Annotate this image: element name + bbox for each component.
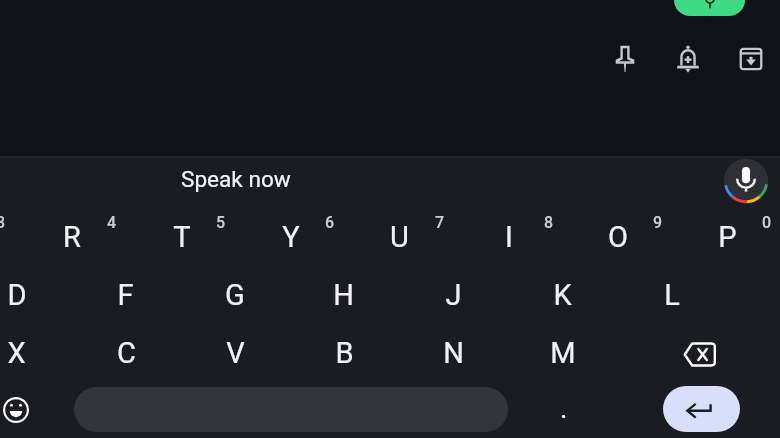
staticText: C [117,336,136,370]
staticText: L [664,278,680,312]
button[interactable]: N [399,324,508,382]
staticText: T [173,220,191,254]
button[interactable]: Enter [663,386,740,432]
staticText: 0 [762,213,772,232]
staticText: M [550,336,576,370]
button[interactable]: V [181,324,290,382]
staticText: X [7,336,26,370]
button[interactable]: J [399,266,508,324]
staticText: H [333,278,354,312]
staticText: . [560,392,568,425]
button[interactable]: Search [674,0,745,16]
button[interactable]: Pin [602,36,648,82]
button[interactable]: H [289,266,398,324]
staticText: D [7,278,27,312]
button[interactable]: U [345,208,454,266]
button[interactable]: Y [236,208,345,266]
staticText: O [608,220,628,254]
button[interactable]: Add reminder [665,36,711,82]
staticText: 3 [0,213,6,232]
button[interactable]: Speak now [154,156,318,202]
button[interactable]: K [508,266,617,324]
staticText: K [553,278,572,312]
staticText: 4 [107,213,117,232]
staticText: Y [282,220,300,254]
button[interactable]: X [0,324,71,382]
staticText: 7 [435,213,445,232]
staticText: I [505,220,513,254]
button[interactable]: Emoji [0,381,46,438]
button[interactable]: T [127,208,236,266]
staticText: G [225,278,245,312]
button[interactable]: M [508,324,617,382]
button[interactable]: I [454,208,563,266]
staticText: Speak now [181,166,291,192]
staticText: N [443,336,464,370]
button[interactable]: R [17,208,126,266]
button[interactable]: F [71,266,180,324]
button[interactable]: G [180,266,289,324]
staticText: F [117,278,134,312]
button[interactable]: P [673,208,780,266]
button[interactable]: D [0,266,71,324]
button[interactable]: Archive [728,36,774,82]
staticText: R [63,220,81,254]
button[interactable]: B [290,324,399,382]
button[interactable]: Voice input [723,158,769,204]
staticText: U [390,220,409,254]
button[interactable]: Backspace [645,325,753,383]
button[interactable]: . [524,379,604,437]
button[interactable]: C [72,324,181,382]
staticText: V [226,336,245,370]
button[interactable]: O [563,208,672,266]
staticText: 6 [325,213,335,232]
staticText: P [718,220,737,254]
staticText: 9 [653,213,663,232]
staticText: 5 [216,213,226,232]
staticText: B [335,336,354,370]
staticText: 8 [544,213,554,232]
staticText: J [445,278,462,312]
button[interactable]: L [617,266,726,324]
button[interactable]: Space [74,387,508,432]
